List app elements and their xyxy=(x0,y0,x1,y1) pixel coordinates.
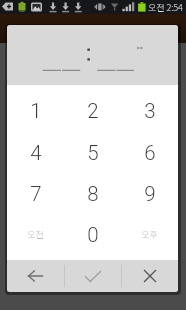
button[interactable]: 2 xyxy=(64,90,121,132)
staticText: 7 xyxy=(30,182,42,206)
button[interactable]: 4 xyxy=(7,132,64,173)
staticText: 4 xyxy=(30,141,42,165)
staticText: 5 xyxy=(87,141,99,165)
button[interactable]: 오후 xyxy=(121,214,178,255)
staticText: 3 xyxy=(144,99,156,123)
staticText: 6 xyxy=(144,141,156,165)
staticText: 오후 xyxy=(141,228,158,241)
button[interactable]: 0 xyxy=(64,214,121,255)
button[interactable]: 1 xyxy=(7,90,64,132)
button[interactable]: 5 xyxy=(64,132,121,173)
button[interactable] xyxy=(7,25,178,85)
button[interactable]: Backspace xyxy=(7,260,64,292)
staticText: 9 xyxy=(144,182,156,206)
staticText: 0 xyxy=(87,223,99,247)
button[interactable]: 3 xyxy=(121,90,178,132)
button[interactable]: Confirm xyxy=(65,260,121,292)
button[interactable]: 7 xyxy=(7,173,64,214)
button[interactable]: 8 xyxy=(64,173,121,214)
button[interactable]: 오전 xyxy=(7,214,64,255)
button[interactable]: 9 xyxy=(121,173,178,214)
staticText: 오전 xyxy=(27,228,44,241)
button[interactable]: 6 xyxy=(121,132,178,173)
staticText: 2 xyxy=(87,99,99,123)
button[interactable]: Cancel xyxy=(122,260,178,292)
staticText: 8 xyxy=(87,182,99,206)
staticText: 오전 2:54 xyxy=(148,1,183,14)
staticText: 1 xyxy=(30,99,42,123)
